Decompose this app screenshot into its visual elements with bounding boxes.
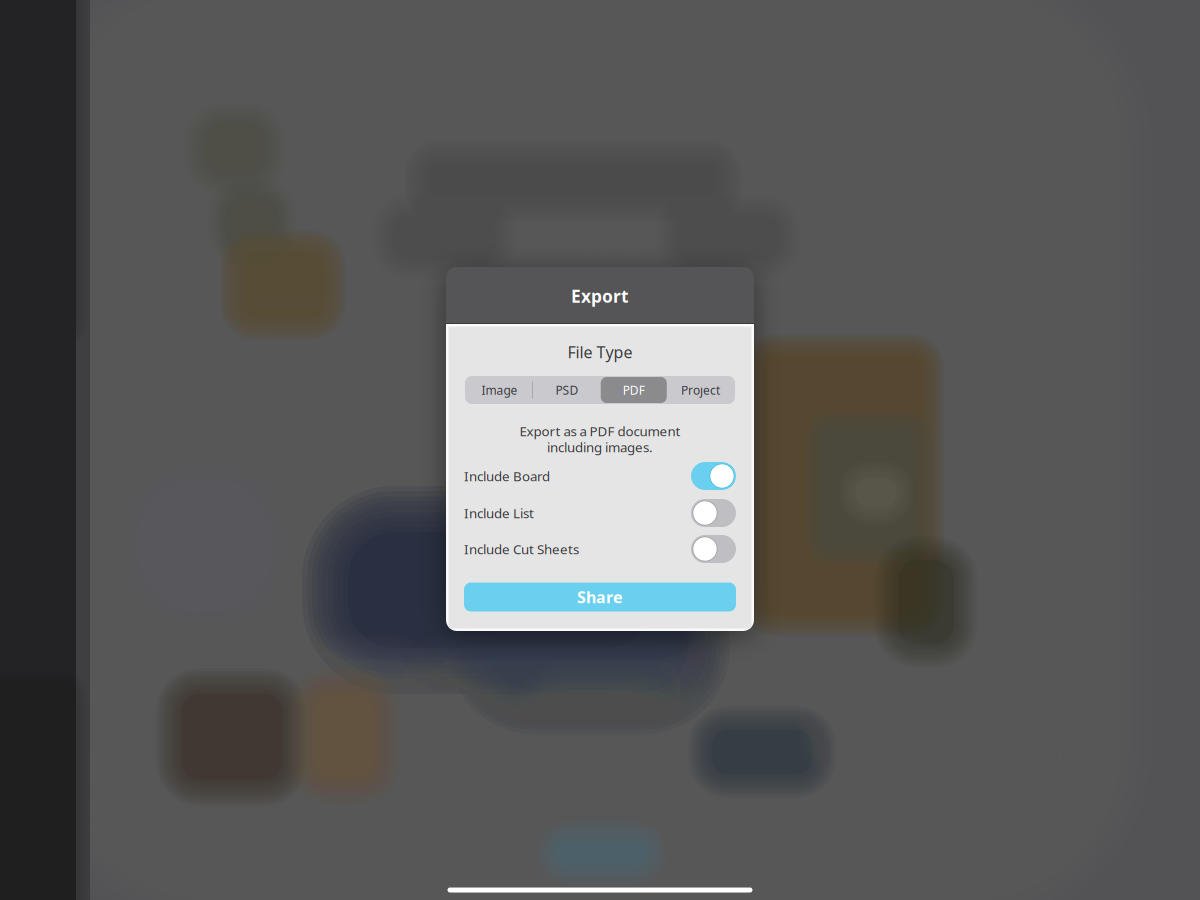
staticText: Export xyxy=(571,284,629,307)
staticText: File Type xyxy=(567,341,632,363)
button[interactable]: Share xyxy=(464,582,736,611)
staticText: Share xyxy=(577,586,623,608)
staticText: Export as a PDF document xyxy=(519,422,680,440)
staticText: Include Cut Sheets xyxy=(464,540,579,558)
staticText: Include List xyxy=(464,504,534,522)
button[interactable]: Include List xyxy=(464,498,736,528)
staticText: Image xyxy=(481,382,517,398)
button[interactable]: Include Cut Sheets xyxy=(464,534,736,564)
staticText: PDF xyxy=(623,382,645,398)
button[interactable]: Image xyxy=(466,376,533,404)
button[interactable]: Project xyxy=(667,376,734,404)
staticText: PSD xyxy=(555,382,578,398)
staticText: Project xyxy=(681,382,720,398)
staticText: Include Board xyxy=(464,467,550,485)
staticText: including images. xyxy=(547,438,653,456)
button[interactable]: Include Board xyxy=(464,461,736,491)
button[interactable]: PDF xyxy=(601,377,667,403)
button[interactable]: PSD xyxy=(533,376,601,404)
